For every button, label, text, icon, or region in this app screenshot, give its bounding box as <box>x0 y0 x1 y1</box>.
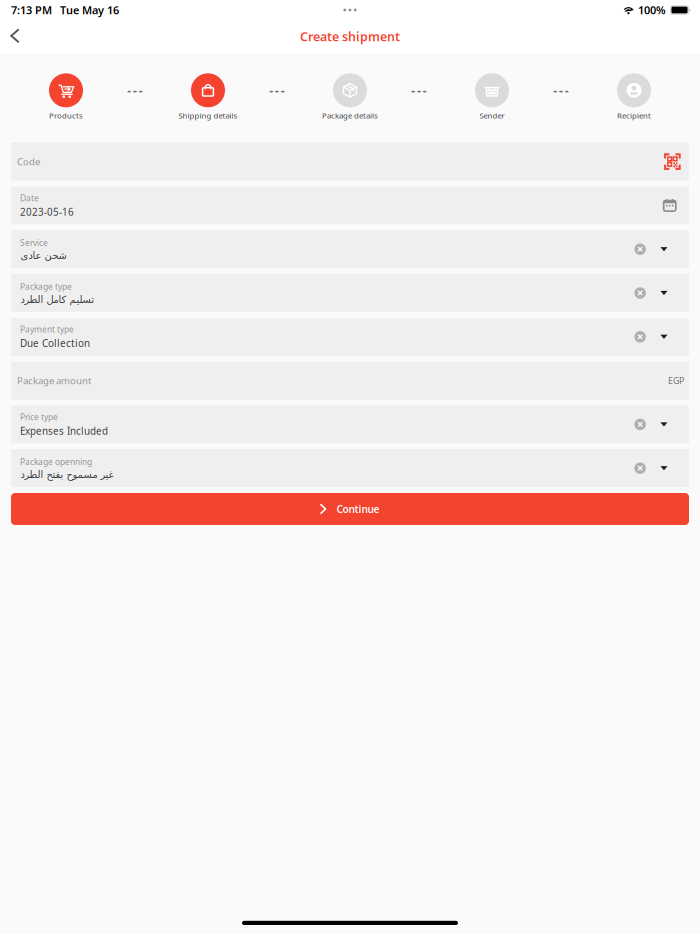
button[interactable]: Clear <box>631 459 649 477</box>
button[interactable]: Shipping details <box>148 73 268 121</box>
staticText: EGP <box>668 375 684 387</box>
button[interactable]: Clear <box>631 284 649 302</box>
staticText: Code <box>17 155 40 168</box>
staticText: Package type <box>20 281 72 292</box>
staticText: Payment type <box>20 324 74 335</box>
button[interactable]: Recipient <box>574 73 694 121</box>
staticText: تسليم كامل الطرد <box>20 294 94 305</box>
staticText: Expenses Included <box>20 424 108 438</box>
button[interactable]: Clear <box>631 240 649 258</box>
button[interactable]: Show options <box>656 241 671 257</box>
button[interactable]: Pick date <box>660 195 679 215</box>
staticText: Shipping details <box>178 110 237 121</box>
button[interactable]: Products <box>6 73 126 121</box>
button[interactable]: Show options <box>656 416 671 432</box>
button[interactable]: Show options <box>656 329 671 345</box>
staticText: Tue May 16 <box>60 3 119 17</box>
staticText: Price type <box>20 411 58 423</box>
staticText: Date <box>20 192 39 204</box>
staticText: Recipient <box>617 110 651 121</box>
staticText: Package openning <box>20 456 92 467</box>
staticText: 7:13 PM <box>11 3 52 17</box>
staticText: Service <box>20 237 48 248</box>
staticText: 2023-05-16 <box>20 205 74 219</box>
staticText: 100% <box>638 3 666 17</box>
staticText: Create shipment <box>300 28 400 45</box>
staticText: Package details <box>322 110 378 121</box>
staticText: Products <box>49 110 83 121</box>
staticText: Continue <box>336 502 379 516</box>
staticText: Due Collection <box>20 337 90 350</box>
button[interactable]: Show options <box>656 460 671 476</box>
button[interactable]: Scan code <box>662 151 683 172</box>
staticText: Sender <box>479 110 504 121</box>
staticText: شحن عادى <box>20 250 66 261</box>
button[interactable]: Continue <box>11 493 689 525</box>
button[interactable]: Clear <box>631 328 649 345</box>
button[interactable]: Show options <box>656 285 671 301</box>
button[interactable]: Package details <box>290 73 410 121</box>
button[interactable]: Sender <box>432 73 552 121</box>
staticText: Package amount <box>17 374 91 387</box>
staticText: غير مسموح بفتح الطرد <box>20 469 113 480</box>
button[interactable]: Clear <box>631 416 649 433</box>
button[interactable]: Back <box>1 22 29 49</box>
